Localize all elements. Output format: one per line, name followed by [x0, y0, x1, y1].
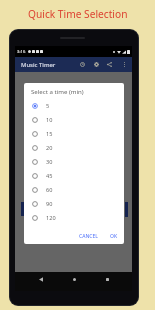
staticText: OK	[110, 233, 118, 240]
button[interactable]: 120	[24, 211, 124, 225]
staticText: 120	[46, 214, 56, 222]
staticText: Quick Time Selection	[28, 7, 128, 21]
button[interactable]: OK	[108, 231, 120, 242]
button[interactable]: Back	[34, 272, 48, 286]
button[interactable]: CANCEL	[77, 231, 100, 242]
button[interactable]: 5	[24, 99, 124, 113]
staticText: 10	[46, 116, 53, 124]
button[interactable]: 45	[24, 169, 124, 183]
button[interactable]: 30	[24, 155, 124, 169]
button[interactable]: 60	[24, 183, 124, 197]
button[interactable]: 10	[24, 113, 124, 127]
staticText: Select a time (min)	[31, 87, 84, 95]
staticText: CANCEL	[79, 233, 98, 240]
button[interactable]: 15	[24, 127, 124, 141]
staticText: 5	[46, 102, 50, 110]
button[interactable]: Home	[67, 272, 81, 286]
staticText: 30	[46, 158, 53, 166]
staticText: 90	[46, 200, 53, 208]
staticText: 15	[46, 130, 53, 138]
button[interactable]: More options	[119, 57, 130, 72]
staticText: 20	[46, 144, 53, 152]
staticText: 45	[46, 172, 53, 180]
staticText: 3:16	[17, 49, 26, 55]
button[interactable]: Share	[104, 57, 115, 72]
button[interactable]: Recent apps	[100, 272, 114, 286]
button[interactable]: Recent timers	[77, 57, 88, 72]
button[interactable]: 20	[24, 141, 124, 155]
staticText: 60	[46, 186, 53, 194]
button[interactable]: 90	[24, 197, 124, 211]
staticText: Music Timer	[21, 61, 56, 69]
button[interactable]: Settings	[91, 57, 102, 72]
